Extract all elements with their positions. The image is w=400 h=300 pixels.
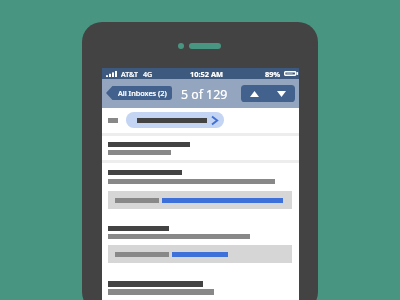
staticText: 5 of 129: [181, 86, 228, 103]
button[interactable]: All Inboxes: [106, 86, 172, 100]
staticText: 4G: [143, 69, 153, 79]
button[interactable]: Search: [126, 112, 224, 128]
staticText: 89%: [265, 69, 281, 79]
staticText: All Inboxes (2): [118, 88, 167, 98]
button[interactable]: Previous message: [241, 85, 268, 102]
button[interactable]: Next message: [268, 85, 295, 102]
staticText: 10:52 AM: [190, 69, 223, 79]
staticText: AT&T: [121, 69, 139, 79]
